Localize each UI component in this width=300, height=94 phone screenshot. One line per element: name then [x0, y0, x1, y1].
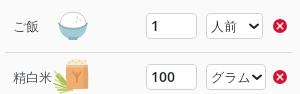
- staticText: 人前: [211, 18, 237, 34]
- button[interactable]: 人前: [206, 13, 263, 39]
- staticText: グラム: [211, 69, 251, 85]
- staticText: 精白米: [13, 69, 52, 85]
- staticText: ご飯: [13, 18, 40, 34]
- button[interactable]: 1: [146, 13, 197, 39]
- staticText: 100: [151, 67, 176, 86]
- button[interactable]: Delete: [273, 70, 287, 84]
- staticText: 1: [151, 16, 160, 35]
- button[interactable]: ご飯: [0, 0, 300, 51]
- button[interactable]: Delete: [273, 19, 287, 33]
- button[interactable]: 100: [146, 64, 197, 90]
- button[interactable]: グラム: [206, 64, 266, 90]
- button[interactable]: 精白米: [0, 51, 300, 94]
